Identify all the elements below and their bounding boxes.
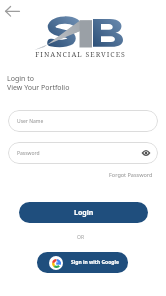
button[interactable]: User Name <box>8 110 158 132</box>
staticText: OR <box>77 234 85 241</box>
button[interactable]: Show password <box>141 148 151 158</box>
staticText: Sign in with Google <box>71 259 120 266</box>
staticText: Password <box>17 150 40 157</box>
button[interactable]: Back <box>2 2 22 22</box>
staticText: Login to View Your Portfolio <box>7 74 70 92</box>
staticText: Login <box>74 208 94 218</box>
staticText: Forgot Password <box>109 171 153 178</box>
staticText: User Name <box>17 118 44 125</box>
button[interactable]: Sign in with Google <box>37 252 128 273</box>
button[interactable]: Login <box>19 202 148 223</box>
staticText: FINANCIAL SERVICES <box>35 50 126 60</box>
button[interactable]: Forgot Password <box>106 169 156 180</box>
button[interactable]: Password <box>8 142 158 164</box>
